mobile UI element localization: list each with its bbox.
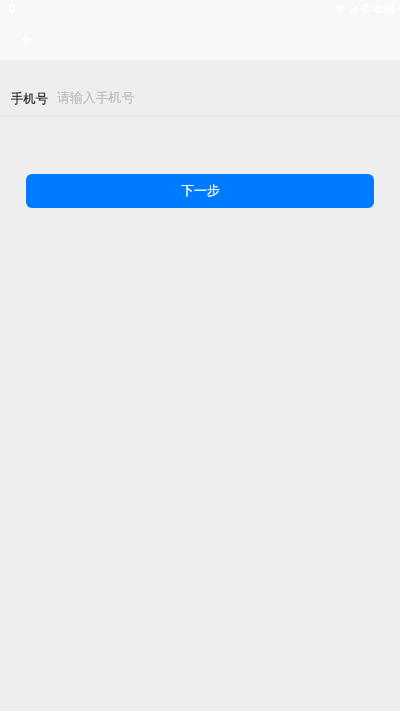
staticText: 下一步	[181, 183, 220, 199]
staticText: 请输入手机号	[57, 90, 135, 106]
staticText: 手机号	[11, 91, 48, 106]
button[interactable]: 下一步	[26, 174, 374, 208]
button[interactable]: 手机号	[0, 80, 400, 116]
